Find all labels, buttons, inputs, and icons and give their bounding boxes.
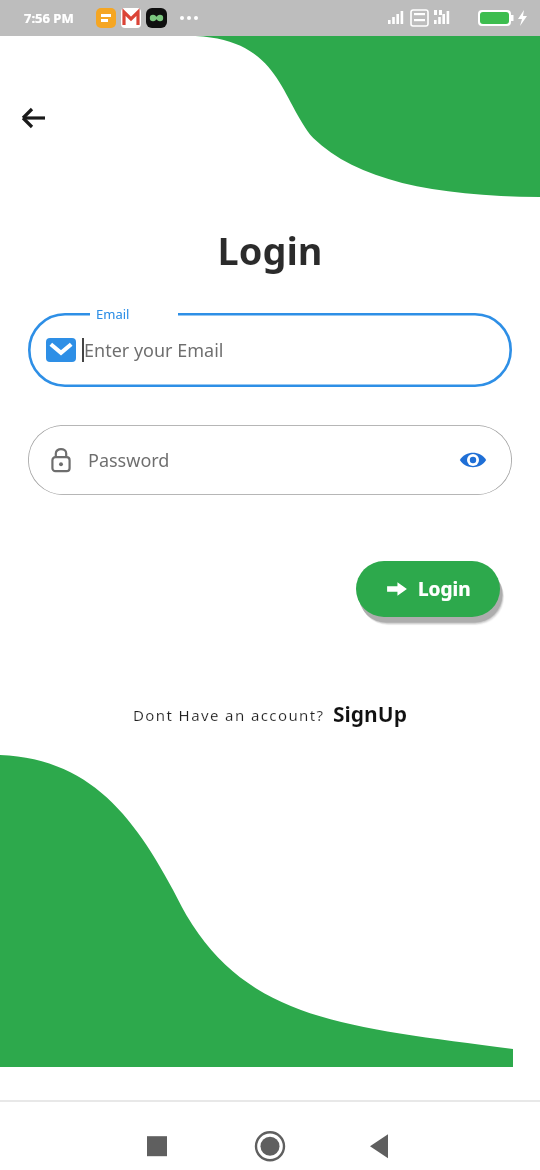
button[interactable]: Home <box>246 1122 294 1170</box>
button[interactable]: Recent apps <box>127 1122 175 1170</box>
button[interactable]: Login <box>356 561 500 617</box>
staticText: Email <box>96 305 130 323</box>
button[interactable]: Back <box>10 94 58 142</box>
button[interactable]: Show password <box>456 443 490 477</box>
button[interactable]: Back <box>355 1122 403 1170</box>
staticText: Password <box>88 448 456 473</box>
staticText: Dont Have an account? <box>133 705 325 725</box>
button[interactable]: Email <box>28 313 512 387</box>
button[interactable]: SignUp <box>333 700 407 729</box>
staticText: Login <box>0 224 540 276</box>
staticText: Login <box>418 576 471 602</box>
staticText: SignUp <box>333 700 407 729</box>
button[interactable]: Password <box>28 425 512 495</box>
staticText: Enter your Email <box>84 338 224 363</box>
staticText: 7:56 PM <box>24 9 74 27</box>
